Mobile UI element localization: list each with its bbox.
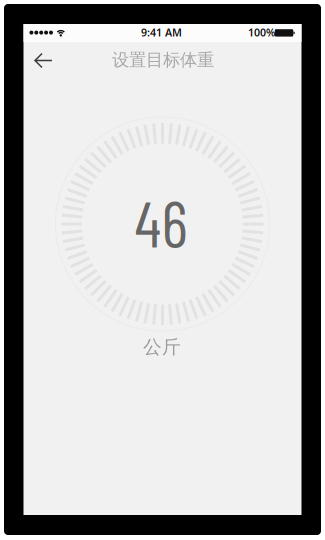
- staticText: 100%: [248, 25, 275, 39]
- staticText: 9:41 AM: [141, 25, 182, 39]
- staticText: 46: [134, 184, 187, 260]
- button[interactable]: [26, 45, 60, 75]
- staticText: 设置目标体重: [112, 49, 214, 71]
- staticText: 公斤: [143, 335, 181, 358]
